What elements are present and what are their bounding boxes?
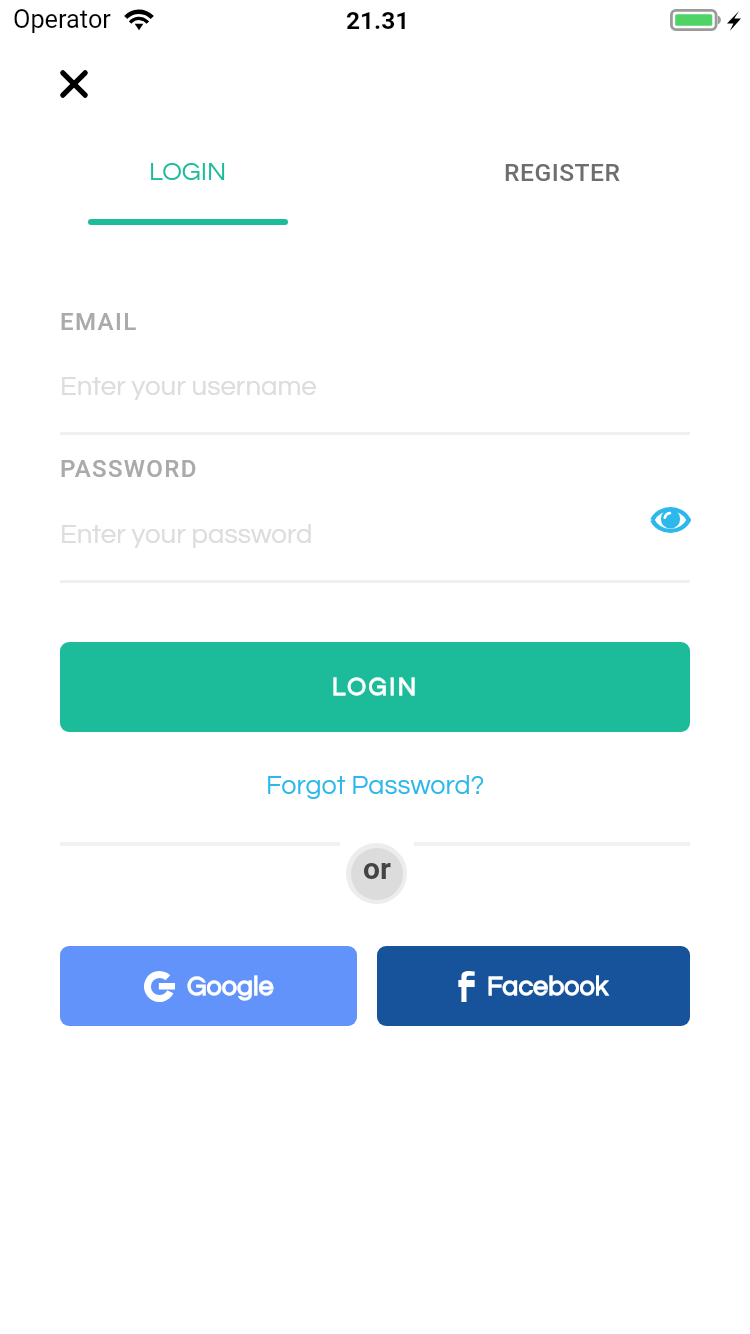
button[interactable]: Show password <box>638 494 702 546</box>
button[interactable]: REGISTER <box>375 140 750 169</box>
staticText: 21.31 <box>346 6 410 35</box>
staticText: PASSWORD <box>60 455 198 483</box>
staticText: EMAIL <box>60 308 138 336</box>
staticText: LOGIN <box>332 674 419 700</box>
staticText: Enter your username <box>60 372 317 400</box>
staticText: Operator <box>13 5 111 35</box>
button[interactable]: LOGIN <box>60 642 690 732</box>
button[interactable]: Forgot Password? <box>0 762 750 810</box>
staticText: Forgot Password? <box>266 772 485 800</box>
staticText: LOGIN <box>149 159 227 186</box>
button[interactable]: Close <box>36 46 112 122</box>
staticText: or <box>363 851 391 886</box>
staticText: Google <box>187 973 274 1001</box>
button[interactable]: LOGIN <box>0 140 375 167</box>
staticText: REGISTER <box>504 158 621 187</box>
staticText: Enter your password <box>60 520 313 548</box>
button[interactable]: Google <box>60 946 357 1026</box>
button[interactable]: Facebook <box>377 946 690 1026</box>
staticText: Facebook <box>487 973 609 1001</box>
